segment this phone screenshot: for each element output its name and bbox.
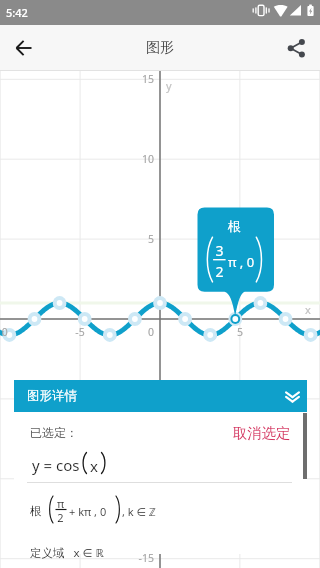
staticText: 2 <box>55 510 66 525</box>
staticText: 0 <box>138 325 154 339</box>
staticText: 15 <box>126 72 154 86</box>
staticText: + kπ , 0 <box>69 504 107 519</box>
staticText: 10 <box>126 152 154 166</box>
staticText: 3 <box>212 241 227 260</box>
button[interactable]: Root callout <box>0 0 320 568</box>
staticText: 已选定： <box>30 425 78 440</box>
staticText: 图形 <box>146 39 174 57</box>
staticText: 图形详情 <box>27 388 77 404</box>
staticText: 2 <box>212 262 227 281</box>
staticText: x <box>90 456 98 476</box>
staticText: x <box>305 302 311 317</box>
other: Collapse <box>277 380 307 412</box>
staticText: 5 <box>126 232 154 246</box>
button[interactable]: 取消选定 <box>229 420 295 446</box>
staticText: -10 <box>0 325 14 339</box>
staticText: , k ∈ ℤ <box>122 504 156 519</box>
staticText: π <box>55 496 66 511</box>
staticText: 根 <box>30 504 42 518</box>
button[interactable]: Share <box>272 25 320 71</box>
staticText: -15 <box>126 551 154 565</box>
staticText: -5 <box>66 325 94 339</box>
staticText: -10 <box>126 471 154 485</box>
button[interactable]: 图形详情 <box>14 380 307 412</box>
staticText: 5:42 <box>6 5 28 20</box>
staticText: y <box>166 78 172 93</box>
staticText: 定义域 x ∈ ℝ <box>30 545 104 561</box>
staticText: 取消选定 <box>233 424 291 442</box>
button[interactable]: Back <box>0 25 48 71</box>
staticText: y = cos <box>32 455 80 475</box>
staticText: π , 0 <box>228 253 255 271</box>
staticText: 根 <box>228 218 241 234</box>
staticText: 5 <box>226 325 254 339</box>
